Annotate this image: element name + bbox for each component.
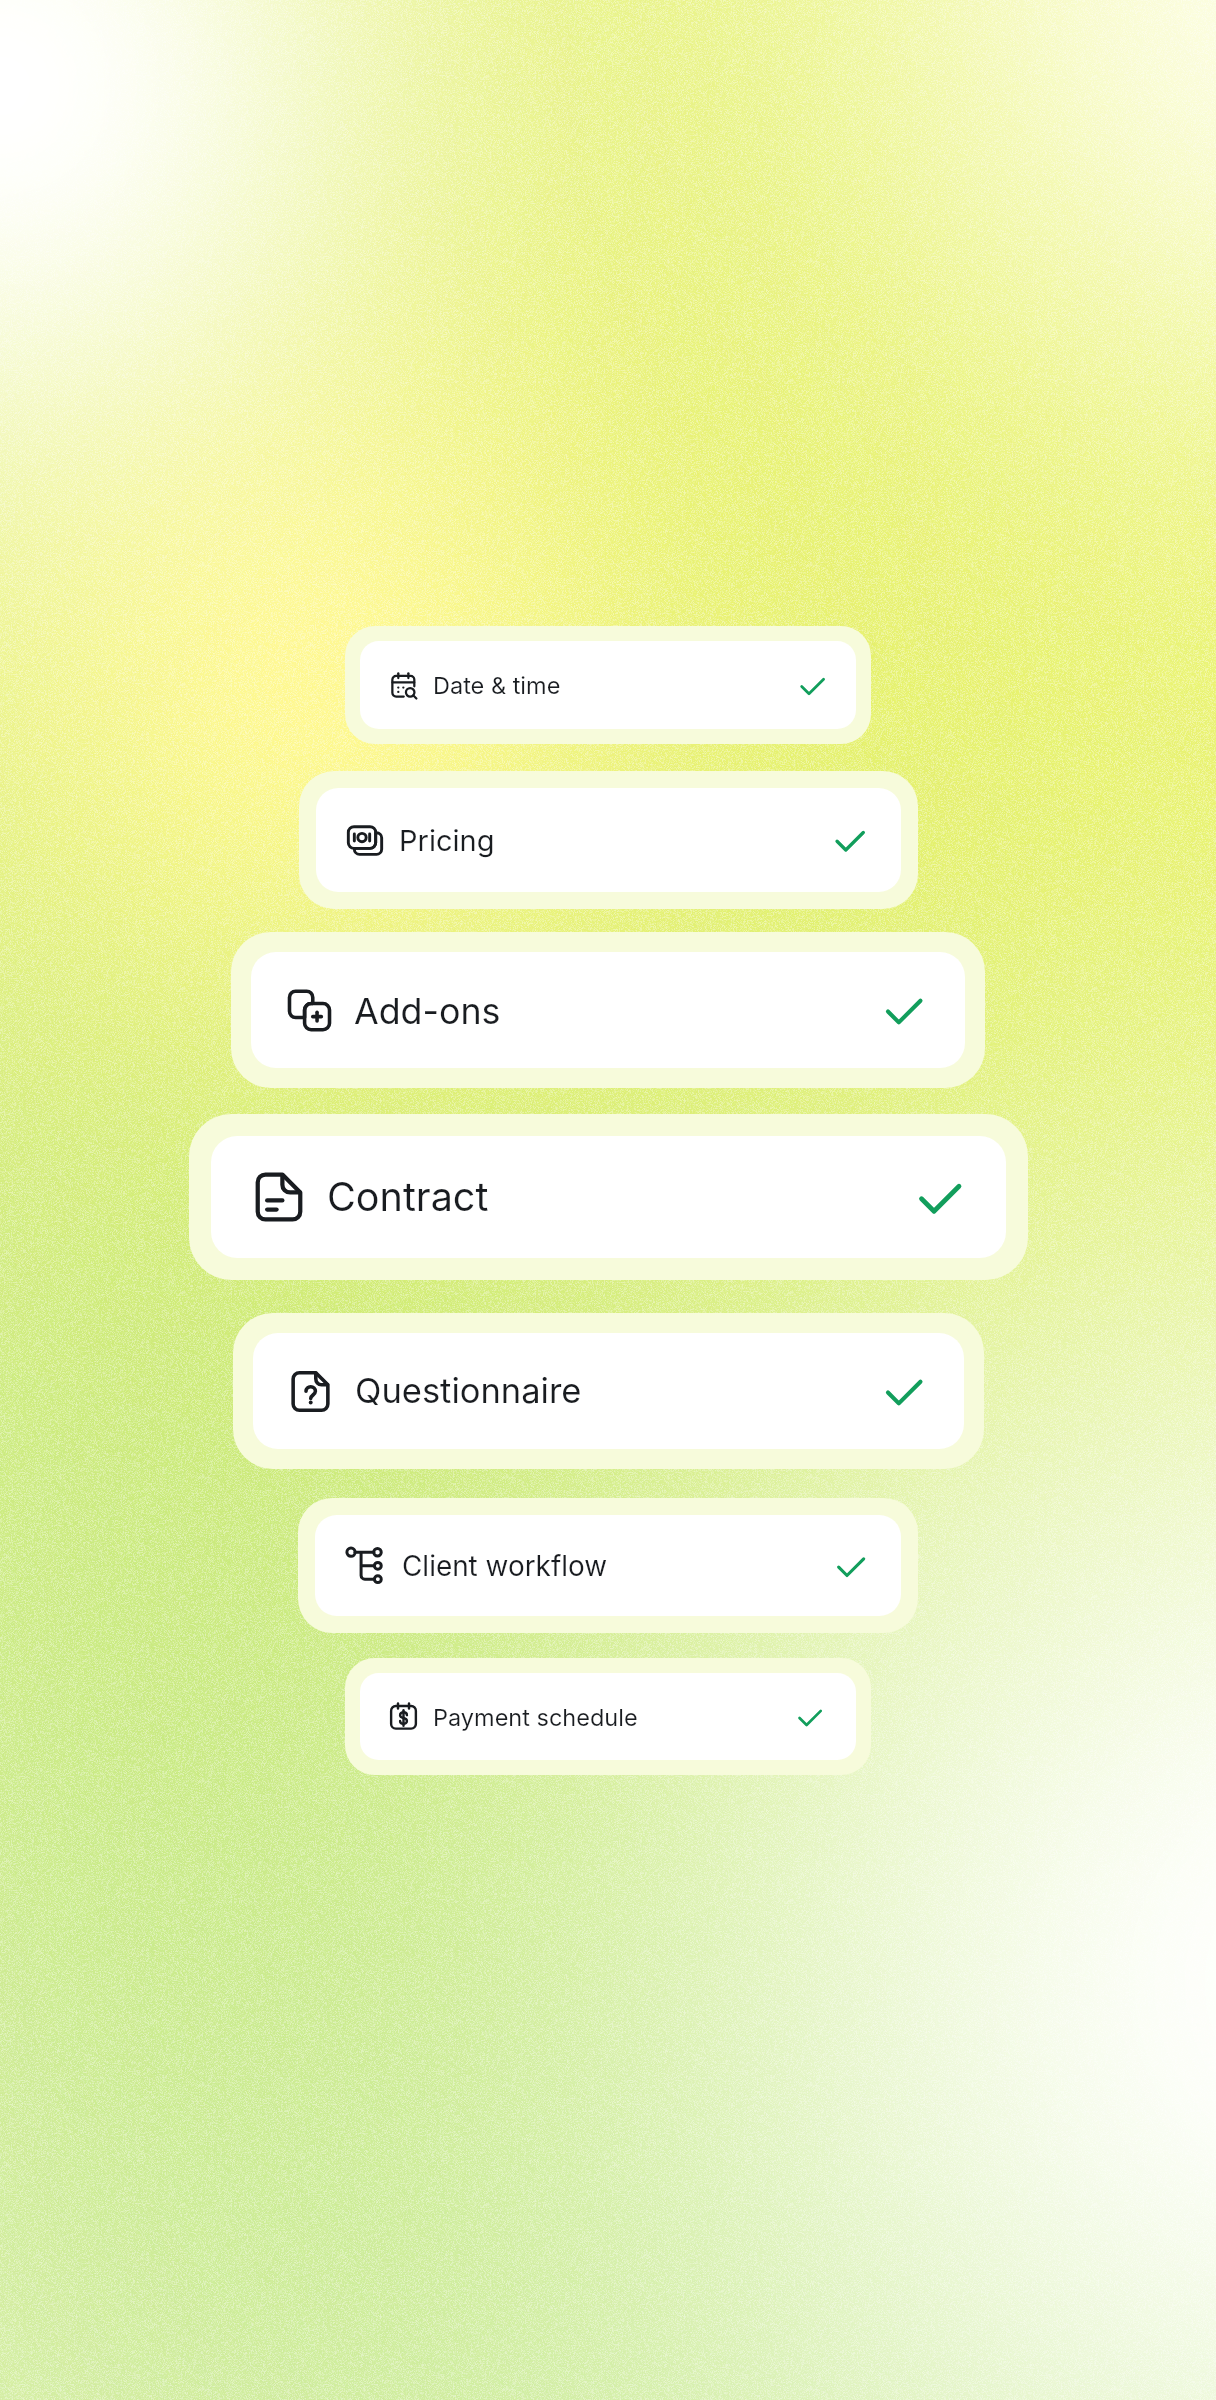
staticText: Pricing xyxy=(399,823,495,858)
button[interactable]: Payment schedule xyxy=(345,1658,871,1775)
button[interactable]: Date & time xyxy=(345,626,871,744)
staticText: Questionnaire xyxy=(355,1370,582,1412)
staticText: Contract xyxy=(327,1173,489,1221)
staticText: Payment schedule xyxy=(433,1703,638,1731)
button[interactable]: Add-ons xyxy=(231,932,985,1088)
staticText: Client workflow xyxy=(402,1549,607,1583)
button[interactable]: Contract xyxy=(189,1114,1028,1280)
button[interactable]: Pricing xyxy=(299,771,918,909)
button[interactable]: Questionnaire xyxy=(233,1313,984,1469)
staticText: Add-ons xyxy=(354,989,501,1032)
button[interactable]: Client workflow xyxy=(298,1498,918,1633)
staticText: Date & time xyxy=(433,671,561,699)
